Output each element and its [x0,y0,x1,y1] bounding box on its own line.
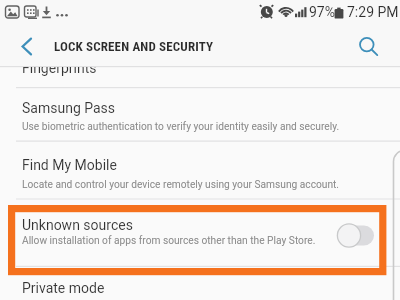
staticText: Samsung Pass [22,100,116,116]
staticText: LOCK SCREEN AND SECURITY [54,39,214,54]
staticText: Locate and control your device remotely … [22,179,340,191]
button[interactable] [330,219,382,253]
button[interactable]: Find My Mobile [0,141,400,198]
staticText: Allow installation of apps from sources … [22,235,316,247]
staticText: 97% [309,4,335,20]
button[interactable]: Samsung Pass [0,88,400,140]
staticText: Private mode [22,280,105,296]
staticText: Use biometric authentication to verify y… [22,121,340,133]
staticText: Find My Mobile [22,157,117,173]
button[interactable]: Unknown sources [0,199,400,266]
staticText: Unknown sources [22,217,133,233]
button[interactable] [352,30,386,62]
staticText: 7:29 PM [347,4,399,20]
button[interactable]: Private mode [0,267,400,300]
staticText: Fingerprints [22,67,97,76]
button[interactable] [8,30,42,62]
button[interactable]: Fingerprints [0,67,400,87]
